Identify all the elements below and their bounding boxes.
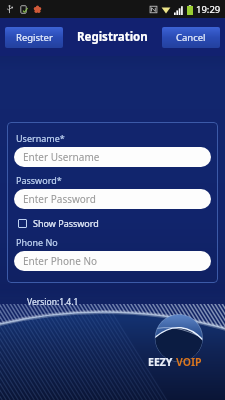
- staticText: VOIP: [176, 355, 202, 369]
- staticText: Phone No: [16, 236, 58, 248]
- button[interactable]: Show Password: [14, 215, 103, 231]
- staticText: Enter Password: [23, 192, 96, 206]
- staticText: Version:1.4.1: [27, 296, 79, 308]
- button[interactable]: Enter Password: [14, 189, 211, 209]
- staticText: Username*: [16, 132, 65, 144]
- button[interactable]: Register: [5, 27, 63, 48]
- staticText: Register: [16, 31, 53, 44]
- button[interactable]: Cancel: [162, 27, 220, 48]
- staticText: Registration: [77, 29, 148, 45]
- staticText: Enter Username: [23, 150, 100, 164]
- staticText: Show Password: [33, 217, 99, 229]
- staticText: Cancel: [176, 31, 206, 44]
- staticText: EEZY: [148, 355, 176, 369]
- button[interactable]: Enter Phone No: [14, 251, 211, 271]
- staticText: Enter Phone No: [23, 254, 98, 268]
- button[interactable]: Enter Username: [14, 147, 211, 167]
- staticText: 19:29: [196, 3, 221, 16]
- staticText: Password*: [16, 174, 62, 186]
